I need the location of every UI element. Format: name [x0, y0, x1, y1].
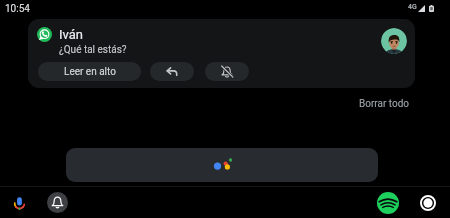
- button[interactable]: Mute notifications: [205, 62, 249, 81]
- button[interactable]: Spotify: [377, 192, 399, 214]
- staticText: Borrar todo: [359, 98, 410, 110]
- staticText: Leer en alto: [64, 66, 116, 78]
- button[interactable]: Google Assistant: [66, 148, 378, 182]
- button[interactable]: App launcher: [420, 195, 436, 211]
- button[interactable]: Leer en alto: [38, 62, 141, 81]
- button[interactable]: Borrar todo: [357, 97, 412, 111]
- staticText: Iván: [59, 27, 83, 42]
- button[interactable]: Reply: [150, 62, 194, 81]
- button[interactable]: Notifications: [47, 192, 68, 213]
- button[interactable]: Iván: [28, 19, 415, 88]
- button[interactable]: Google Assistant microphone: [7, 191, 31, 215]
- staticText: ¿Qué tal estás?: [59, 44, 127, 56]
- staticText: 10:54: [5, 3, 30, 15]
- staticText: 4G: [408, 3, 417, 11]
